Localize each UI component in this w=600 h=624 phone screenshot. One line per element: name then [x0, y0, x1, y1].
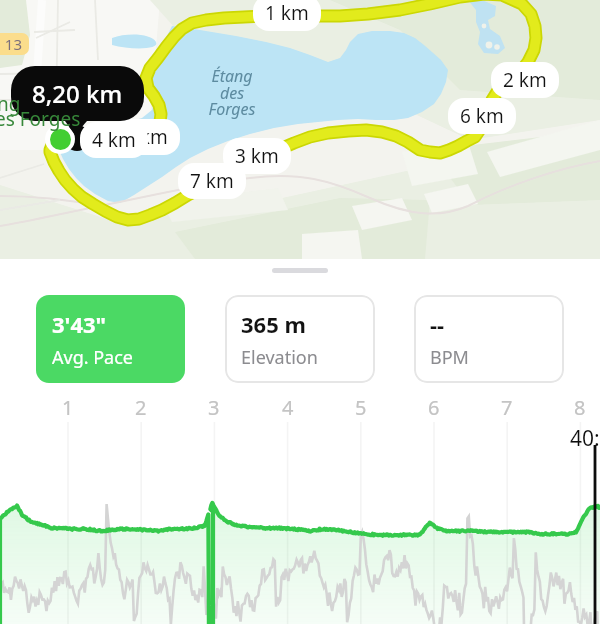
button[interactable]: 3'43" — [36, 295, 185, 383]
button[interactable]: 2 km — [491, 62, 559, 98]
staticText: 6 — [428, 394, 440, 421]
staticText: Étang des Forges — [208, 65, 256, 119]
staticText: 3 km — [235, 143, 279, 169]
staticText: Avg. Pace — [52, 345, 133, 370]
staticText: ng — [0, 91, 21, 117]
button[interactable]: 5 km — [112, 119, 180, 155]
button[interactable]: Current position — [45, 124, 75, 154]
staticText: 3'43" — [52, 309, 107, 339]
staticText: D 13 — [0, 34, 23, 54]
staticText: 3 — [208, 394, 220, 421]
button[interactable]: 4 km — [80, 122, 148, 158]
button[interactable]: -- — [414, 295, 564, 383]
staticText: 1 — [62, 394, 74, 421]
staticText: 5 km — [124, 124, 168, 150]
staticText: 5 — [355, 394, 367, 421]
staticText: BPM — [430, 345, 469, 370]
button[interactable]: 1 km — [253, 0, 321, 31]
staticText: -- — [430, 309, 445, 339]
button[interactable]: 6 km — [448, 98, 516, 134]
staticText: 6 km — [460, 103, 504, 129]
staticText: es Forges — [0, 106, 81, 132]
staticText: 4 — [282, 394, 294, 421]
staticText: 2 km — [503, 67, 547, 93]
staticText: 40:12 — [570, 424, 600, 453]
staticText: 2 — [135, 394, 147, 421]
button[interactable]: 365 m — [225, 295, 375, 383]
staticText: 8 — [574, 394, 586, 421]
staticText: Elevation — [241, 345, 318, 370]
staticText: 365 m — [241, 309, 306, 339]
staticText: 7 — [501, 394, 513, 421]
staticText: 8,20 km — [32, 77, 123, 110]
button[interactable]: 3 km — [223, 138, 291, 174]
staticText: 4 km — [92, 127, 136, 153]
staticText: 7 km — [190, 168, 234, 194]
button[interactable]: 8,20 km — [11, 66, 144, 121]
staticText: 1 km — [265, 0, 309, 26]
button[interactable]: 7 km — [178, 163, 246, 199]
